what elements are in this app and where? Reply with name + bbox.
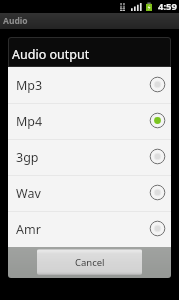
button[interactable]: Wav: [8, 175, 171, 211]
staticText: Mp3: [16, 77, 43, 94]
staticText: 4:59: [158, 0, 177, 13]
staticText: 3gp: [16, 149, 39, 166]
button[interactable]: Amr: [8, 211, 171, 247]
staticText: Cancel: [75, 256, 105, 269]
other: Battery: [146, 2, 152, 11]
staticText: Audio output: [12, 46, 90, 63]
staticText: Amr: [16, 221, 41, 238]
button[interactable]: 3gp: [8, 139, 171, 175]
button[interactable]: Mp4: [8, 103, 171, 139]
button[interactable]: Mp3: [8, 67, 171, 103]
button[interactable]: Cancel: [37, 249, 142, 275]
other: Mobile data: [120, 3, 125, 11]
other: Signal strength: [131, 3, 140, 11]
staticText: Wav: [16, 185, 41, 202]
staticText: Mp4: [16, 113, 43, 130]
staticText: Audio: [3, 15, 28, 27]
